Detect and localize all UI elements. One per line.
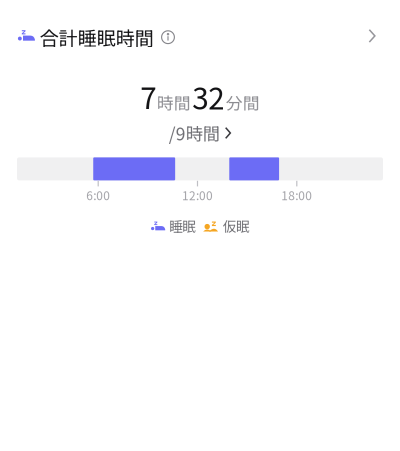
staticText: 合計睡眠時間 (40, 23, 154, 51)
staticText: 仮眠 (223, 216, 249, 236)
staticText: 18:00 (281, 187, 312, 204)
staticText: 睡眠 (169, 216, 195, 236)
staticText: 12:00 (182, 187, 213, 204)
button[interactable]: /9時間 (0, 122, 400, 144)
button[interactable]: 合計睡眠時間 (0, 0, 400, 72)
staticText: /9時間 (169, 120, 220, 146)
staticText: 分間 (226, 90, 260, 114)
staticText: 32 (192, 75, 224, 118)
staticText: 7 (140, 75, 156, 118)
staticText: 時間 (157, 90, 191, 114)
staticText: 6:00 (86, 187, 110, 204)
